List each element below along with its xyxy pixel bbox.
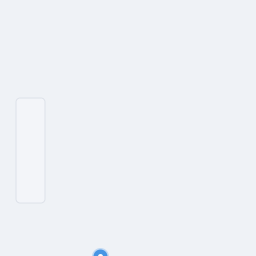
- button[interactable]: Panel: [16, 98, 45, 203]
- button[interactable]: Current location: [92, 248, 109, 256]
